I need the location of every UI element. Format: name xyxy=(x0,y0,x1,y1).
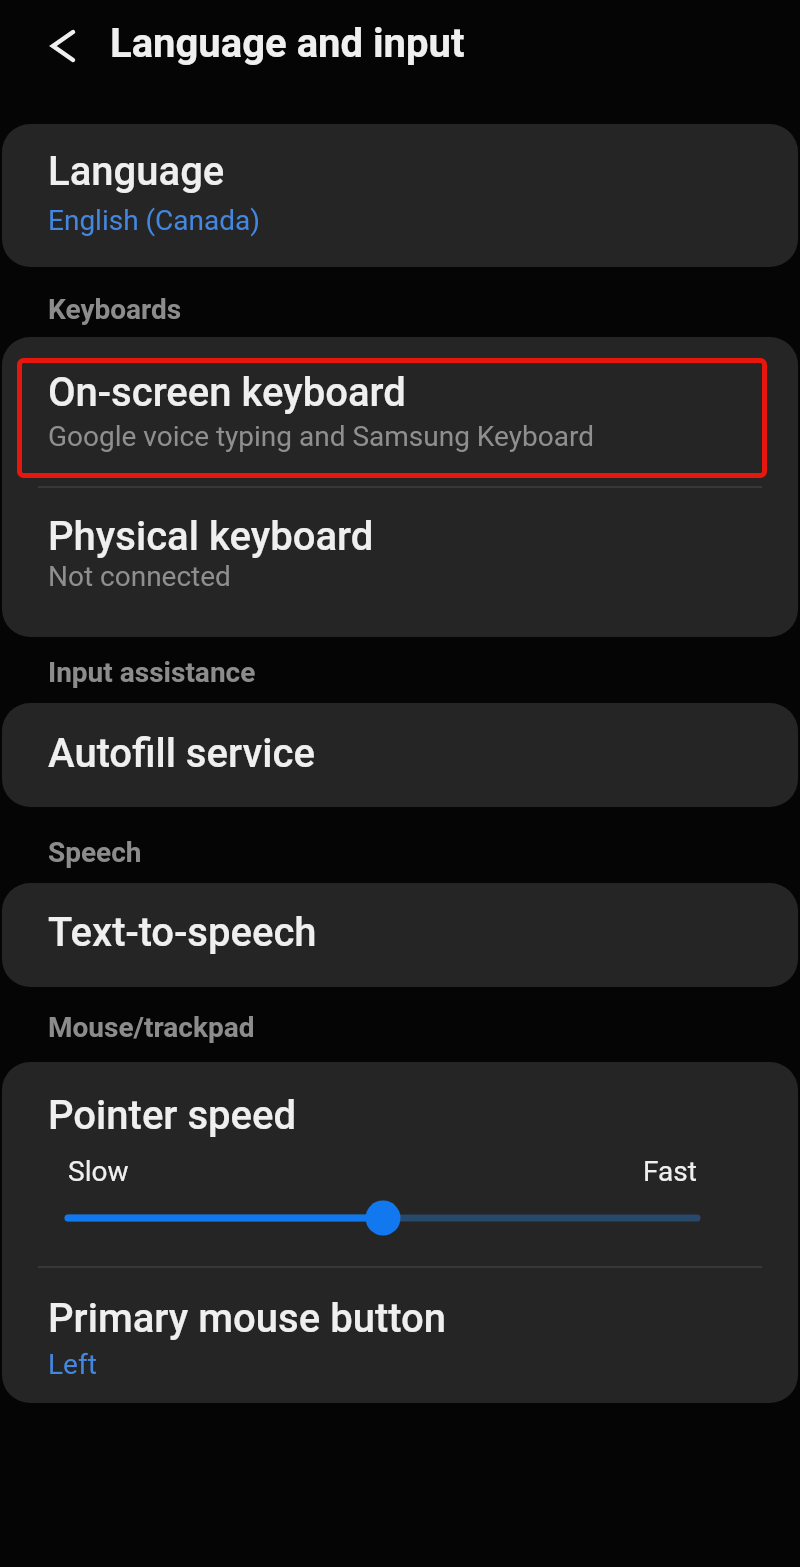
button[interactable] xyxy=(0,1190,800,1246)
staticText: Primary mouse button xyxy=(48,1295,446,1342)
button[interactable] xyxy=(2,883,798,987)
button[interactable] xyxy=(2,124,798,267)
button[interactable] xyxy=(2,703,798,807)
staticText: Not connected xyxy=(48,560,231,593)
staticText: Left xyxy=(48,1348,97,1381)
staticText: Fast xyxy=(643,1155,697,1188)
staticText: Keyboards xyxy=(48,293,182,326)
staticText: Text-to-speech xyxy=(48,909,317,956)
staticText: Google voice typing and Samsung Keyboard xyxy=(48,420,594,453)
staticText: English (Canada) xyxy=(48,204,261,237)
button[interactable] xyxy=(2,487,798,637)
staticText: On-screen keyboard xyxy=(48,369,406,416)
staticText: Mouse/trackpad xyxy=(48,1011,255,1044)
staticText: Slow xyxy=(68,1155,129,1188)
staticText: Language and input xyxy=(110,20,465,67)
staticText: Physical keyboard xyxy=(48,513,374,560)
staticText: Input assistance xyxy=(48,656,256,689)
button[interactable] xyxy=(40,23,86,69)
staticText: Pointer speed xyxy=(48,1092,297,1139)
staticText: Language xyxy=(48,148,225,195)
staticText: Autofill service xyxy=(48,730,315,777)
staticText: Speech xyxy=(48,836,142,869)
button[interactable] xyxy=(2,337,798,487)
